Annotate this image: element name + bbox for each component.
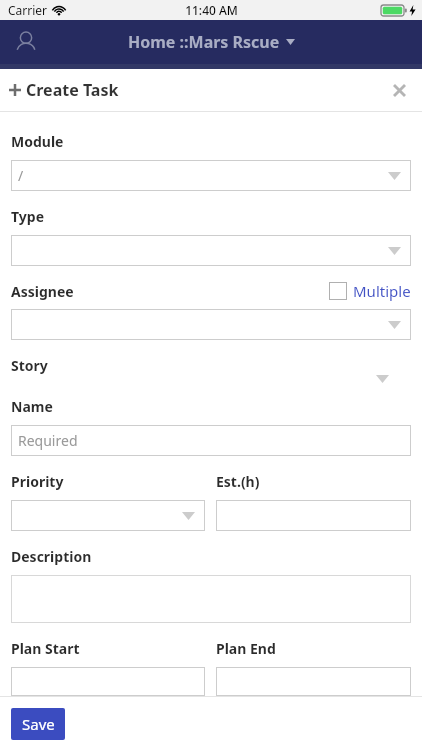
button[interactable]: Multiple: [329, 281, 411, 301]
staticText: Required: [18, 431, 78, 450]
staticText: Name: [11, 397, 53, 416]
staticText: Module: [11, 132, 64, 151]
staticText: Description: [11, 547, 92, 566]
button[interactable]: [11, 667, 205, 696]
button[interactable]: [11, 309, 411, 340]
button[interactable]: Account: [6, 22, 46, 62]
staticText: Save: [22, 714, 55, 734]
staticText: Plan End: [216, 639, 276, 658]
button[interactable]: Save: [11, 708, 65, 740]
button[interactable]: [216, 667, 411, 696]
staticText: Priority: [11, 472, 64, 491]
button[interactable]: Required: [11, 425, 411, 456]
button[interactable]: [11, 500, 205, 531]
staticText: Assignee: [11, 282, 74, 301]
staticText: Story: [11, 356, 48, 375]
button[interactable]: Home ::Mars Rscue: [128, 31, 295, 53]
staticText: /: [18, 166, 24, 185]
staticText: Carrier: [8, 2, 48, 18]
staticText: Type: [11, 207, 44, 226]
button[interactable]: [216, 500, 411, 531]
button[interactable]: Create Task: [9, 79, 119, 101]
staticText: 11:40 AM: [185, 2, 238, 18]
button[interactable]: Close: [382, 73, 416, 107]
button[interactable]: /: [11, 160, 411, 191]
button[interactable]: [11, 575, 411, 623]
button[interactable]: [11, 235, 411, 266]
staticText: Multiple: [353, 281, 411, 301]
staticText: Est.(h): [216, 472, 260, 491]
staticText: Home ::Mars Rscue: [128, 31, 280, 53]
staticText: Plan Start: [11, 639, 80, 658]
staticText: Create Task: [26, 79, 119, 101]
